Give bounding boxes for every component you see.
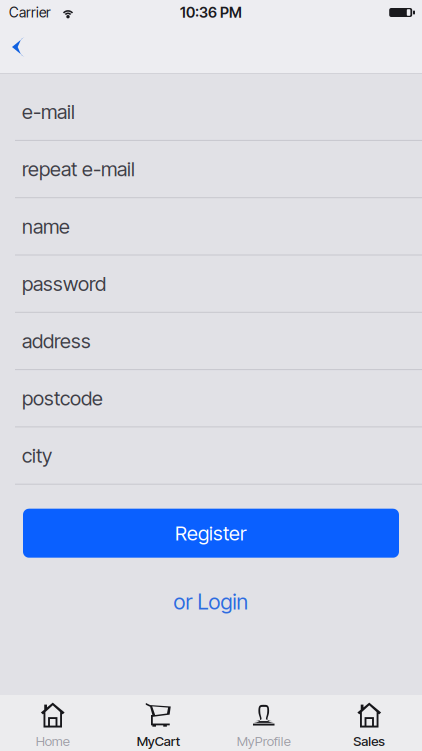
staticText: address bbox=[22, 329, 91, 353]
staticText: password bbox=[22, 272, 106, 296]
staticText: repeat e-mail bbox=[22, 157, 135, 181]
button[interactable]: MyProfile bbox=[211, 695, 316, 751]
staticText: e-mail bbox=[22, 100, 75, 124]
staticText: Carrier bbox=[9, 4, 51, 21]
button[interactable]: Register bbox=[0, 485, 422, 558]
staticText: MyCart bbox=[137, 733, 180, 749]
button[interactable]: Home bbox=[0, 695, 105, 751]
staticText: Home bbox=[36, 733, 70, 749]
button[interactable]: MyCart bbox=[105, 695, 211, 751]
button[interactable]: Back bbox=[0, 25, 46, 73]
staticText: name bbox=[22, 214, 70, 238]
button[interactable]: Sales bbox=[316, 695, 422, 751]
staticText: Sales bbox=[353, 733, 385, 749]
staticText: postcode bbox=[22, 386, 103, 410]
staticText: city bbox=[22, 443, 52, 468]
staticText: or Login bbox=[173, 589, 248, 615]
staticText: Register bbox=[175, 521, 247, 545]
staticText: MyProfile bbox=[237, 733, 291, 749]
button[interactable]: or Login bbox=[0, 558, 422, 615]
staticText: 10:36 PM bbox=[180, 4, 242, 21]
